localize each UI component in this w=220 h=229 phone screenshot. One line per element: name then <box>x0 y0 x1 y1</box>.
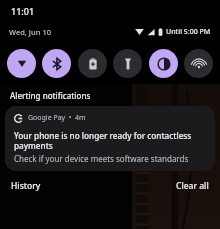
staticText: Until 5:00 PM <box>166 27 211 37</box>
staticText: Your phone is no longer ready for contac… <box>14 130 206 151</box>
button[interactable]: Dark theme <box>149 49 178 78</box>
button[interactable]: Bluetooth <box>42 49 71 78</box>
staticText: Google Pay • 4m <box>28 113 86 123</box>
staticText: Wed, Jun 10 <box>9 27 51 37</box>
button[interactable]: Google Pay • 4m <box>5 106 215 171</box>
staticText: Alerting notifications <box>10 90 91 101</box>
button[interactable]: Clear all <box>165 175 220 197</box>
staticText: History <box>11 180 41 192</box>
staticText: Check if your device meets software stan… <box>14 153 189 164</box>
button[interactable]: Wi-Fi <box>7 49 36 78</box>
button[interactable]: Cast <box>184 49 213 78</box>
staticText: Clear all <box>176 180 209 192</box>
staticText: 11:01 <box>11 5 35 17</box>
button[interactable]: Flashlight <box>113 49 142 78</box>
button[interactable]: Battery Saver <box>78 49 107 78</box>
button[interactable]: History <box>0 175 52 197</box>
